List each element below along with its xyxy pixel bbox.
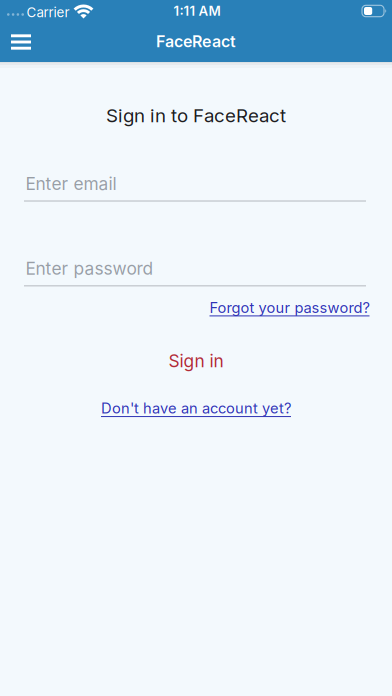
staticText: Enter email [25,173,116,194]
button[interactable]: Enter password [24,258,366,286]
button[interactable]: Forgot your password? [209,299,369,316]
button[interactable]: Enter email [24,173,366,202]
staticText: Enter password [25,258,153,279]
button[interactable]: Don't have an account yet? [101,400,291,417]
staticText: Forgot your password? [209,299,369,316]
staticText: Sign in to FaceReact [106,104,286,126]
staticText: Carrier [26,5,69,20]
staticText: Don't have an account yet? [101,400,291,417]
staticText: Sign in [168,351,223,371]
button[interactable]: Sign in [168,351,223,371]
staticText: FaceReact [156,32,236,51]
button[interactable] [0,33,31,49]
staticText: 1:11 AM [173,3,220,19]
